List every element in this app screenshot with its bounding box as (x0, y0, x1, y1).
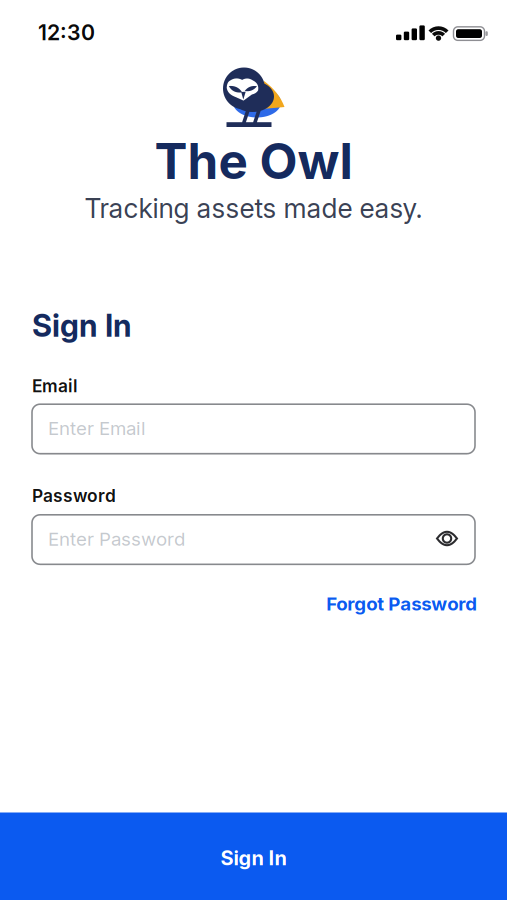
staticText: Enter Password (48, 528, 185, 550)
staticText: Email (32, 376, 78, 396)
staticText: Forgot Password (326, 593, 477, 615)
staticText: Tracking assets made easy. (84, 192, 422, 224)
button[interactable]: Show Password (430, 523, 464, 553)
staticText: Password (32, 485, 116, 506)
staticText: Sign In (220, 846, 286, 870)
staticText: Sign In (32, 307, 132, 344)
button[interactable]: Sign In (0, 812, 507, 900)
staticText: Enter Email (48, 417, 146, 439)
button[interactable]: Forgot Password (326, 593, 477, 615)
staticText: 12:30 (38, 20, 95, 45)
staticText: The Owl (154, 132, 352, 190)
